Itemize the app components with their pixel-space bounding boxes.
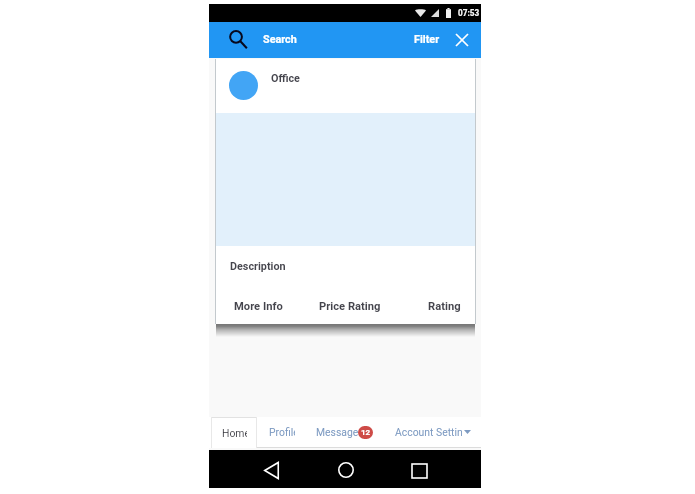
staticText: Message — [316, 426, 358, 438]
staticText: Office — [271, 72, 300, 85]
button[interactable]: Close — [452, 30, 472, 50]
staticText: Description — [230, 260, 286, 273]
staticText: Home — [222, 427, 247, 439]
staticText: More Info — [234, 300, 283, 313]
staticText: 12 — [361, 428, 371, 437]
staticText: 07:53 — [458, 8, 478, 18]
button[interactable]: Recent apps — [404, 457, 434, 485]
staticText: Price Rating — [319, 300, 381, 313]
button[interactable]: Home — [211, 417, 257, 448]
button[interactable]: Search — [226, 28, 250, 52]
staticText: Rating — [428, 300, 461, 313]
button[interactable]: Back — [256, 456, 286, 484]
button[interactable]: Home — [331, 456, 361, 484]
button[interactable]: Message — [307, 417, 379, 447]
staticText: Account Settings — [395, 426, 462, 438]
staticText: Search — [263, 33, 297, 46]
staticText: Filter — [414, 33, 440, 46]
button[interactable]: Filter — [414, 33, 440, 46]
button[interactable]: More Info — [234, 295, 283, 317]
staticText: Profile — [269, 426, 295, 438]
button[interactable]: Price Rating — [319, 295, 381, 317]
button[interactable]: Account Settings — [385, 417, 475, 447]
button[interactable]: Rating — [428, 295, 461, 317]
button[interactable]: Profile — [257, 417, 307, 447]
